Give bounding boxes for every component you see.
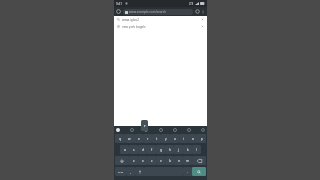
staticText: b — [169, 159, 171, 163]
staticText: w — [128, 137, 131, 141]
button[interactable]: Tabs — [195, 9, 200, 14]
button[interactable]: ?123 — [115, 167, 126, 176]
button[interactable]: g — [156, 145, 165, 154]
button[interactable]: r — [143, 134, 152, 143]
button[interactable]: . — [183, 167, 192, 176]
staticText: LTE — [189, 2, 194, 6]
button[interactable]: Keyboard tool 1 — [144, 128, 148, 132]
button[interactable]: y — [161, 134, 170, 143]
button[interactable]: Remove suggestion — [201, 18, 204, 21]
button[interactable]: s — [129, 145, 138, 154]
staticText: i — [183, 137, 184, 141]
staticText: v — [160, 159, 162, 163]
button[interactable]: h — [165, 145, 174, 154]
button[interactable]: f — [147, 145, 156, 154]
staticText: h — [169, 148, 171, 152]
button[interactable]: m — [183, 156, 192, 165]
staticText: ?123 — [118, 170, 124, 173]
staticText: j — [178, 148, 179, 152]
button[interactable]: More options — [201, 10, 205, 14]
staticText: p — [201, 137, 203, 141]
staticText: d — [142, 148, 144, 152]
staticText: www.igloo2 — [122, 18, 140, 22]
button[interactable]: n — [174, 156, 183, 165]
button[interactable]: Expand — [201, 128, 205, 132]
staticText: new york bagels — [122, 25, 146, 29]
staticText: u — [174, 137, 176, 141]
staticText: k — [187, 148, 189, 152]
staticText: c — [151, 159, 153, 163]
staticText: , — [130, 170, 131, 174]
staticText: z — [133, 159, 135, 163]
button[interactable]: k — [183, 145, 192, 154]
button[interactable]: Voice input — [135, 167, 144, 176]
button[interactable]: Back — [116, 9, 121, 14]
staticText: l — [196, 148, 197, 152]
staticText: n — [178, 159, 180, 163]
button[interactable]: d — [138, 145, 147, 154]
staticText: 9:41 — [116, 2, 123, 6]
staticText: t — [156, 137, 158, 141]
button[interactable]: www.igloo2 — [117, 16, 204, 23]
button[interactable]: b — [165, 156, 174, 165]
staticText: . — [187, 170, 188, 174]
button[interactable]: z — [129, 156, 138, 165]
button[interactable]: w — [125, 134, 134, 143]
staticText: o — [192, 137, 194, 141]
staticText: y — [165, 137, 167, 141]
staticText: m — [186, 159, 189, 163]
staticText: r — [144, 123, 146, 128]
button[interactable]: www.example.com/search — [125, 9, 191, 15]
button[interactable]: Keyboard tool 0 — [130, 128, 134, 132]
staticText: q — [119, 137, 121, 141]
staticText: e — [138, 137, 140, 141]
staticText: f — [151, 148, 153, 152]
button[interactable]: Keyboard tool 3 — [173, 128, 177, 132]
button[interactable]: Search — [192, 167, 206, 176]
button[interactable]: u — [170, 134, 179, 143]
button[interactable]: Keyboard tool 4 — [187, 128, 191, 132]
staticText: g — [160, 148, 162, 152]
button[interactable]: Google — [116, 128, 120, 132]
staticText: www.example.com/search — [129, 10, 167, 14]
button[interactable]: i — [179, 134, 188, 143]
staticText: x — [142, 159, 144, 163]
button[interactable]: x — [138, 156, 147, 165]
button[interactable]: p — [197, 134, 206, 143]
staticText: r — [147, 137, 149, 141]
button[interactable]: j — [174, 145, 183, 154]
staticText: s — [133, 148, 135, 152]
button[interactable]: e — [134, 134, 143, 143]
button[interactable]: q — [115, 134, 125, 143]
button[interactable]: new york bagels — [117, 23, 204, 30]
button[interactable]: v — [156, 156, 165, 165]
button[interactable]: Remove suggestion — [201, 25, 204, 28]
staticText: a — [124, 148, 126, 152]
button[interactable]: c — [147, 156, 156, 165]
button[interactable]: Keyboard tool 2 — [159, 128, 163, 132]
button[interactable]: o — [188, 134, 197, 143]
button[interactable]: t — [152, 134, 161, 143]
button[interactable]: , — [126, 167, 135, 176]
button[interactable]: a — [120, 145, 129, 154]
button[interactable]: Shift — [115, 156, 129, 165]
button[interactable]: l — [192, 145, 201, 154]
button[interactable]: Backspace — [192, 156, 206, 165]
